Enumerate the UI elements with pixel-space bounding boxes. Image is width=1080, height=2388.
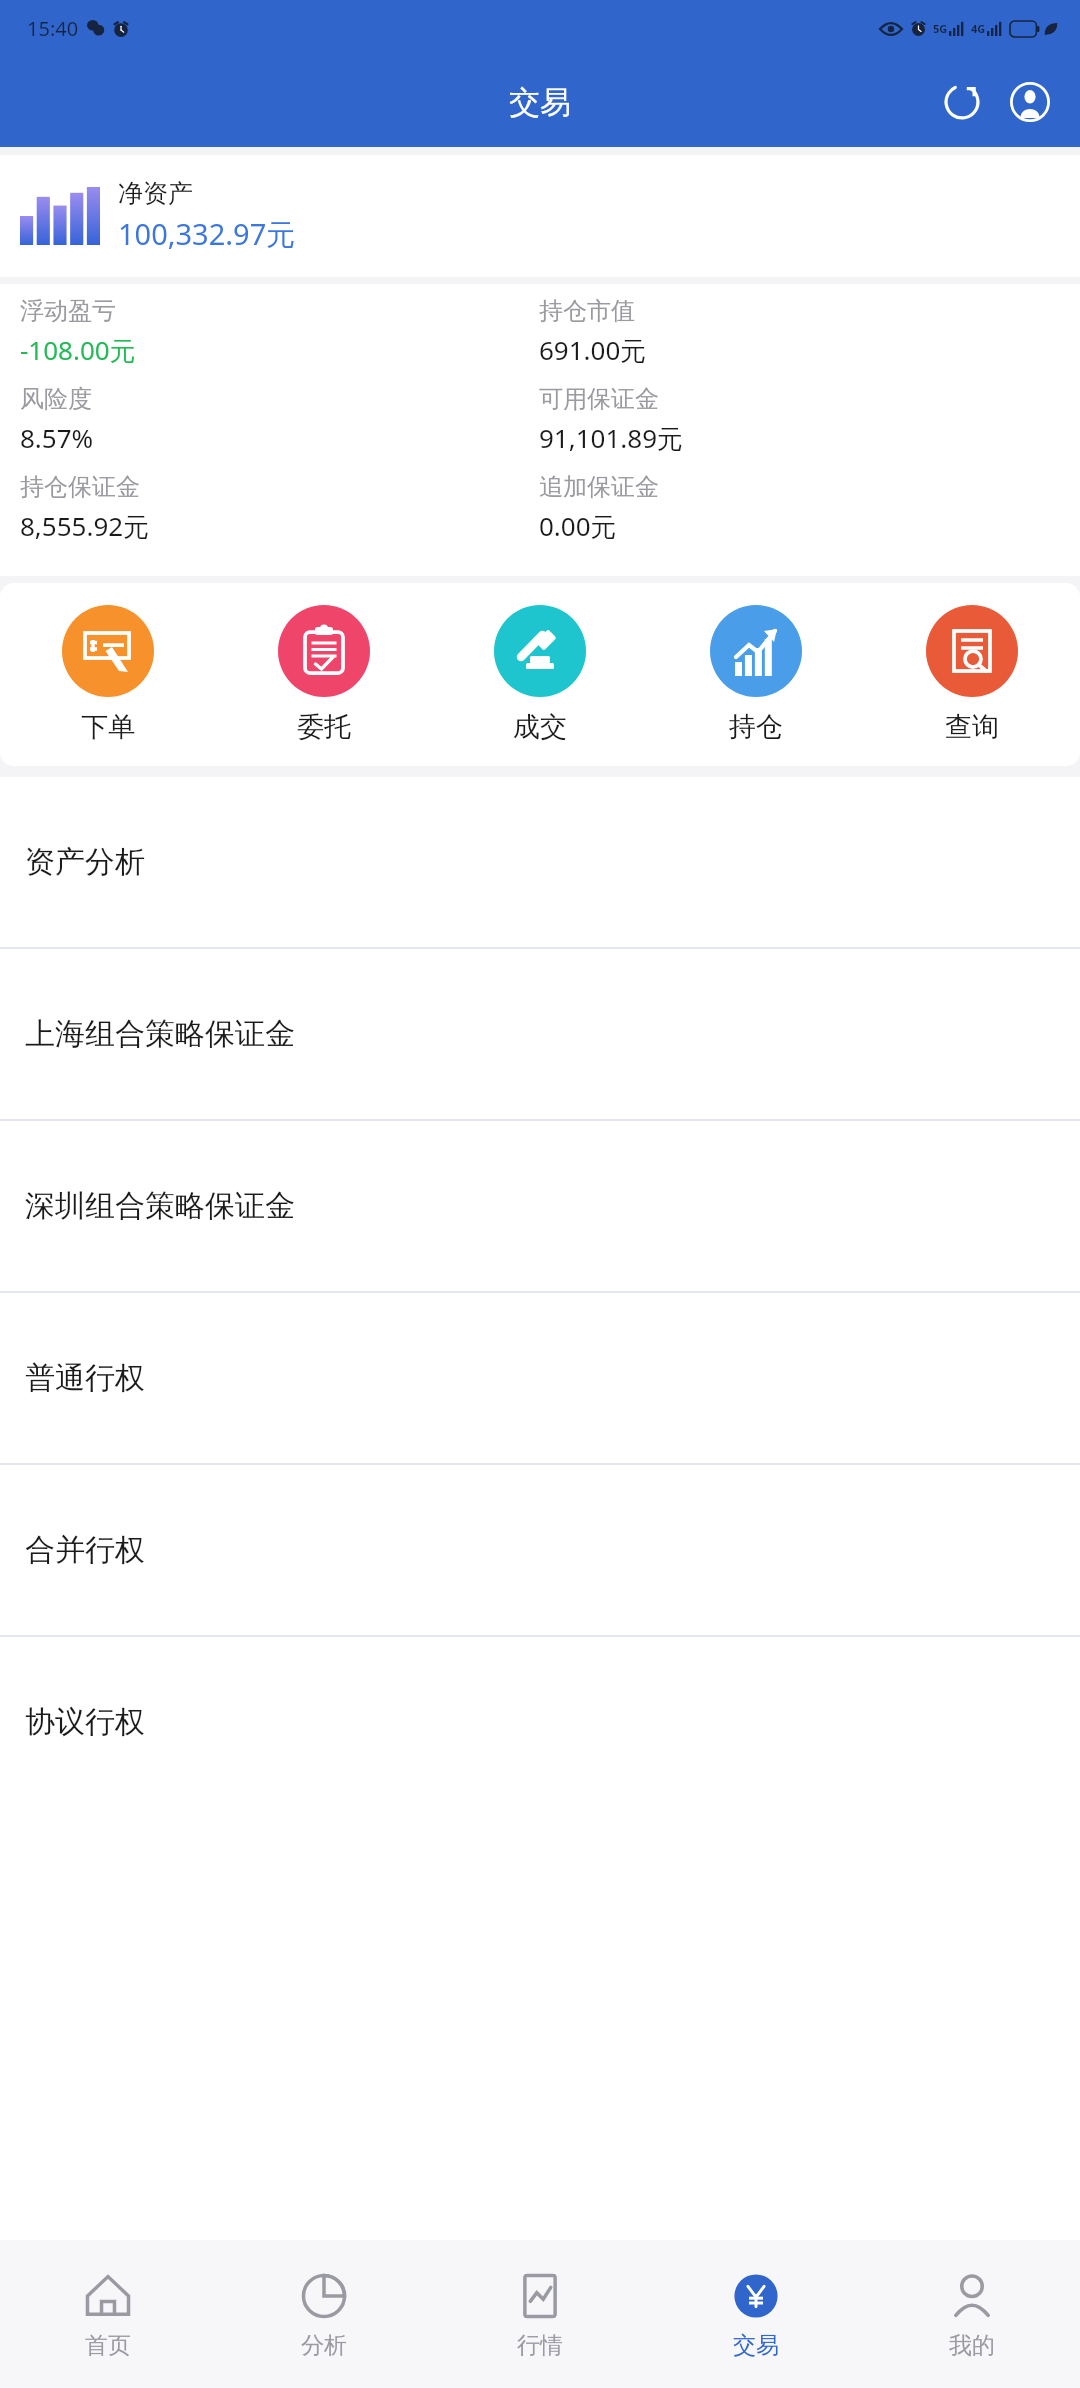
staticText: 查询 [945,710,999,744]
staticText: 91,101.89元 [539,420,684,456]
button[interactable]: 行情 [432,2240,648,2388]
staticText: 下单 [81,710,135,744]
staticText: 5G [933,21,948,36]
button[interactable]: 资产分析 [0,777,1080,947]
staticText: 深圳组合策略保证金 [25,1187,295,1225]
button[interactable]: 交易 [648,2240,864,2388]
staticText: 持仓 [729,710,783,744]
staticText: 净资产 [118,178,193,209]
staticText: 691.00元 [539,332,647,368]
staticText: 上海组合策略保证金 [25,1015,295,1053]
button[interactable]: 我的 [864,2240,1080,2388]
staticText: 成交 [513,710,567,744]
button[interactable]: 分析 [216,2240,432,2388]
staticText: 持仓保证金 [20,472,140,502]
button[interactable]: 查询 [864,601,1080,748]
button[interactable]: 净资产 [0,155,1080,277]
staticText: 协议行权 [25,1703,145,1741]
staticText: 8,555.92元 [20,508,150,544]
staticText: 资产分析 [25,843,145,881]
staticText: 持仓市值 [539,296,635,326]
staticText: 委托 [297,710,351,744]
staticText: 我的 [949,2331,995,2360]
button[interactable]: 协议行权 [0,1637,1080,1807]
button[interactable]: 下单 [0,601,216,748]
button[interactable]: 首页 [0,2240,216,2388]
staticText: 15:40 [27,15,79,42]
staticText: 风险度 [20,384,92,414]
staticText: 4G [971,21,986,36]
staticText: 合并行权 [25,1531,145,1569]
staticText: 追加保证金 [539,472,659,502]
button[interactable]: Account [1002,74,1058,130]
staticText: 8.57% [20,420,94,455]
staticText: 可用保证金 [539,384,659,414]
staticText: 首页 [85,2331,131,2360]
staticText: 分析 [301,2331,347,2360]
button[interactable]: 委托 [216,601,432,748]
staticText: 交易 [733,2331,779,2360]
button[interactable]: 普通行权 [0,1293,1080,1463]
staticText: 交易 [509,83,571,122]
staticText: 普通行权 [25,1359,145,1397]
button[interactable]: 持仓 [648,601,864,748]
button[interactable]: 深圳组合策略保证金 [0,1121,1080,1291]
button[interactable]: Refresh [934,74,990,130]
staticText: -108.00元 [20,332,136,368]
staticText: 100,332.97元 [118,214,296,254]
button[interactable]: 上海组合策略保证金 [0,949,1080,1119]
button[interactable]: 合并行权 [0,1465,1080,1635]
staticText: 行情 [517,2331,563,2360]
staticText: 0.00元 [539,508,617,544]
button[interactable]: 成交 [432,601,648,748]
staticText: 浮动盈亏 [20,296,116,326]
